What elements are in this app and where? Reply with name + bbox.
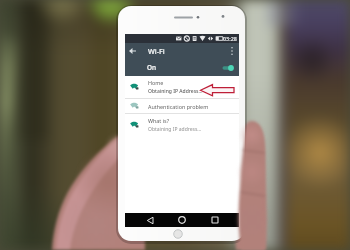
button[interactable]: Navigate up bbox=[125, 43, 139, 59]
staticText: On bbox=[147, 63, 157, 72]
staticText: Obtaining IP address… bbox=[148, 126, 202, 133]
button[interactable]: More options bbox=[226, 43, 238, 59]
staticText: Home bbox=[148, 79, 164, 86]
button[interactable]: What is? bbox=[125, 114, 239, 135]
staticText: What is? bbox=[148, 117, 170, 124]
button[interactable]: Home bbox=[125, 76, 239, 98]
staticText: Obtaining IP Address… bbox=[148, 88, 203, 95]
button[interactable]: Back bbox=[138, 213, 162, 227]
button[interactable]: Home bbox=[170, 213, 194, 227]
staticText: 03:28 bbox=[223, 35, 237, 42]
staticText: Authentication problem bbox=[148, 103, 209, 110]
button[interactable]: On bbox=[125, 59, 239, 76]
button[interactable]: Recent apps bbox=[203, 213, 227, 227]
staticText: Wi-Fi bbox=[148, 46, 165, 56]
button[interactable]: Authentication problem bbox=[125, 99, 239, 113]
